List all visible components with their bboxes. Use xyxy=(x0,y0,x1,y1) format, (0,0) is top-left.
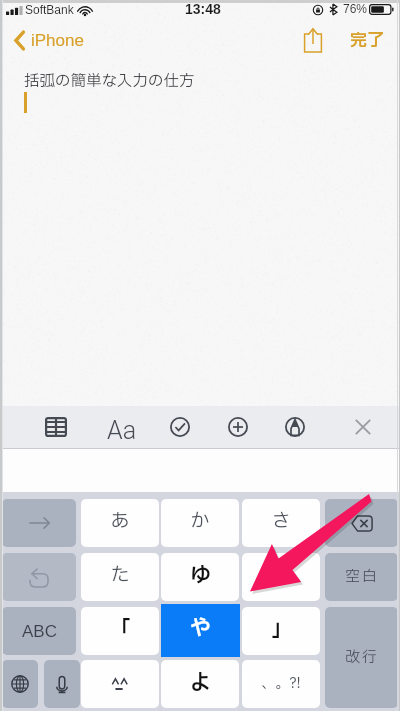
button[interactable]: 完了 xyxy=(350,28,384,53)
staticText: 完了 xyxy=(350,28,384,53)
button[interactable]: ゆ xyxy=(161,553,239,601)
button[interactable]: Dictation xyxy=(44,660,80,708)
button[interactable]: ABC xyxy=(2,607,76,655)
button[interactable]: 「 xyxy=(81,607,159,655)
staticText: な xyxy=(271,561,291,589)
staticText: 空白 xyxy=(345,566,379,588)
button[interactable]: か xyxy=(161,499,239,547)
button[interactable]: ^_^ xyxy=(81,660,159,708)
button[interactable]: Add attachment xyxy=(228,417,248,437)
button[interactable]: Space xyxy=(325,553,398,601)
staticText: iPhone xyxy=(31,31,84,50)
staticText: 13:48 xyxy=(185,1,221,17)
button[interactable]: な xyxy=(242,553,320,601)
staticText: 「 xyxy=(110,614,131,645)
staticText: Aa xyxy=(107,416,137,445)
staticText: SoftBank xyxy=(25,3,74,16)
button[interactable]: Share xyxy=(303,25,323,52)
staticText: か xyxy=(190,507,210,535)
button[interactable]: Table xyxy=(45,417,67,437)
button[interactable]: Switch keyboard xyxy=(2,660,38,708)
staticText: 括弧の簡単な入力の仕方 xyxy=(24,70,195,93)
button[interactable]: 」 xyxy=(242,607,320,655)
button[interactable]: さ xyxy=(242,499,320,547)
staticText: ABC xyxy=(22,622,57,641)
staticText: や xyxy=(190,613,211,644)
button[interactable]: Checklist xyxy=(170,417,190,437)
button[interactable]: よ xyxy=(161,660,239,708)
button[interactable]: 、。?! xyxy=(242,660,320,708)
button[interactable]: Close keyboard xyxy=(355,419,371,435)
staticText: た xyxy=(110,561,130,589)
staticText: 76% xyxy=(343,2,368,15)
staticText: あ xyxy=(110,507,130,535)
button[interactable]: iPhone xyxy=(13,30,84,51)
button[interactable]: Undo xyxy=(2,553,76,601)
button[interactable]: や xyxy=(161,604,240,657)
staticText: ゆ xyxy=(190,560,211,591)
staticText: よ xyxy=(190,667,211,698)
button[interactable]: Return xyxy=(325,607,398,708)
staticText: さ xyxy=(271,507,291,535)
button[interactable]: Aa xyxy=(107,416,137,445)
button[interactable]: Delete xyxy=(325,499,398,547)
staticText: 、。?! xyxy=(261,673,301,694)
button[interactable]: Markup xyxy=(285,417,305,437)
staticText: 」 xyxy=(271,614,292,645)
button[interactable]: あ xyxy=(81,499,159,547)
button[interactable]: Next xyxy=(2,499,76,547)
staticText: 改行 xyxy=(345,647,379,669)
button[interactable]: た xyxy=(81,553,159,601)
